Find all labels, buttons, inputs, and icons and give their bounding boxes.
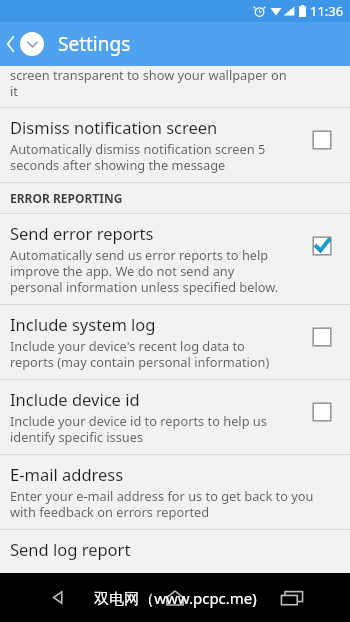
staticText: Settings — [58, 31, 131, 57]
staticText: Include system log — [10, 313, 156, 335]
button[interactable]: Include device id — [0, 380, 350, 454]
staticText: 11:36 — [310, 2, 344, 20]
staticText: Include device id — [10, 388, 140, 410]
button[interactable]: Include system log — [0, 305, 350, 379]
staticText: Include your device id to reports to hel… — [10, 412, 267, 445]
staticText: ERROR REPORTING — [10, 190, 123, 206]
staticText: Automatically send us error reports to h… — [10, 246, 279, 295]
staticText: E-mail address — [10, 463, 124, 485]
button[interactable]: screen transparent to show your wallpape… — [0, 66, 350, 107]
button[interactable]: Send log report — [0, 530, 350, 573]
staticText: Include your device's recent log data to… — [10, 337, 270, 370]
button[interactable]: Back — [0, 573, 116, 622]
button[interactable]: Home — [116, 573, 233, 622]
staticText: screen transparent to show your wallpape… — [10, 66, 287, 99]
staticText: Enter your e-mail address for us to get … — [10, 487, 314, 520]
staticText: Send log report — [10, 538, 131, 560]
button[interactable]: E-mail address — [0, 455, 350, 529]
button[interactable]: Recent apps — [233, 573, 350, 622]
staticText: Dismiss notification screen — [10, 116, 218, 138]
staticText: Automatically dismiss notification scree… — [10, 140, 266, 173]
button[interactable]: Back — [0, 22, 48, 66]
staticText: Send error reports — [10, 222, 154, 244]
staticText: 双电网（www.pcpc.me) — [94, 588, 257, 608]
button[interactable]: Send error reports — [0, 214, 350, 304]
button[interactable]: Dismiss notification screen — [0, 108, 350, 182]
